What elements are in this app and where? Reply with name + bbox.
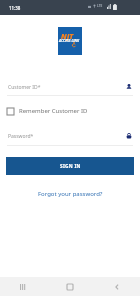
staticText: NJT [61,31,74,41]
staticText: Password* [8,133,34,140]
staticText: ACCESS LINK [59,38,80,43]
button[interactable]: Home [46,277,93,296]
button[interactable]: SIGN IN [6,157,134,175]
staticText: LTE [97,4,103,8]
button[interactable]: Remember Customer ID [7,106,133,116]
button[interactable]: Password* [0,128,140,144]
staticText: SIGN IN [60,163,81,170]
button[interactable]: Back [93,277,140,296]
staticText: Customer ID* [8,84,41,91]
staticText: Remember Customer ID [19,107,88,115]
button[interactable]: Forgot your password? [38,190,103,198]
button[interactable]: Customer ID* [0,79,140,95]
button[interactable]: Recents [0,277,46,296]
staticText: 11:38 [9,5,21,11]
